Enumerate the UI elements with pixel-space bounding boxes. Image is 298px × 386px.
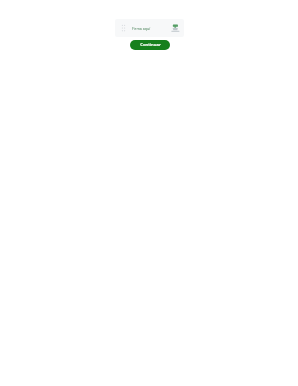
button[interactable]: Continuar	[130, 40, 170, 50]
other: Firmar	[170, 23, 181, 34]
button[interactable]: Reordenar	[115, 19, 184, 37]
staticText: Firma aquí	[132, 26, 151, 31]
other: Reordenar	[120, 23, 127, 33]
staticText: Continuar	[140, 42, 161, 48]
